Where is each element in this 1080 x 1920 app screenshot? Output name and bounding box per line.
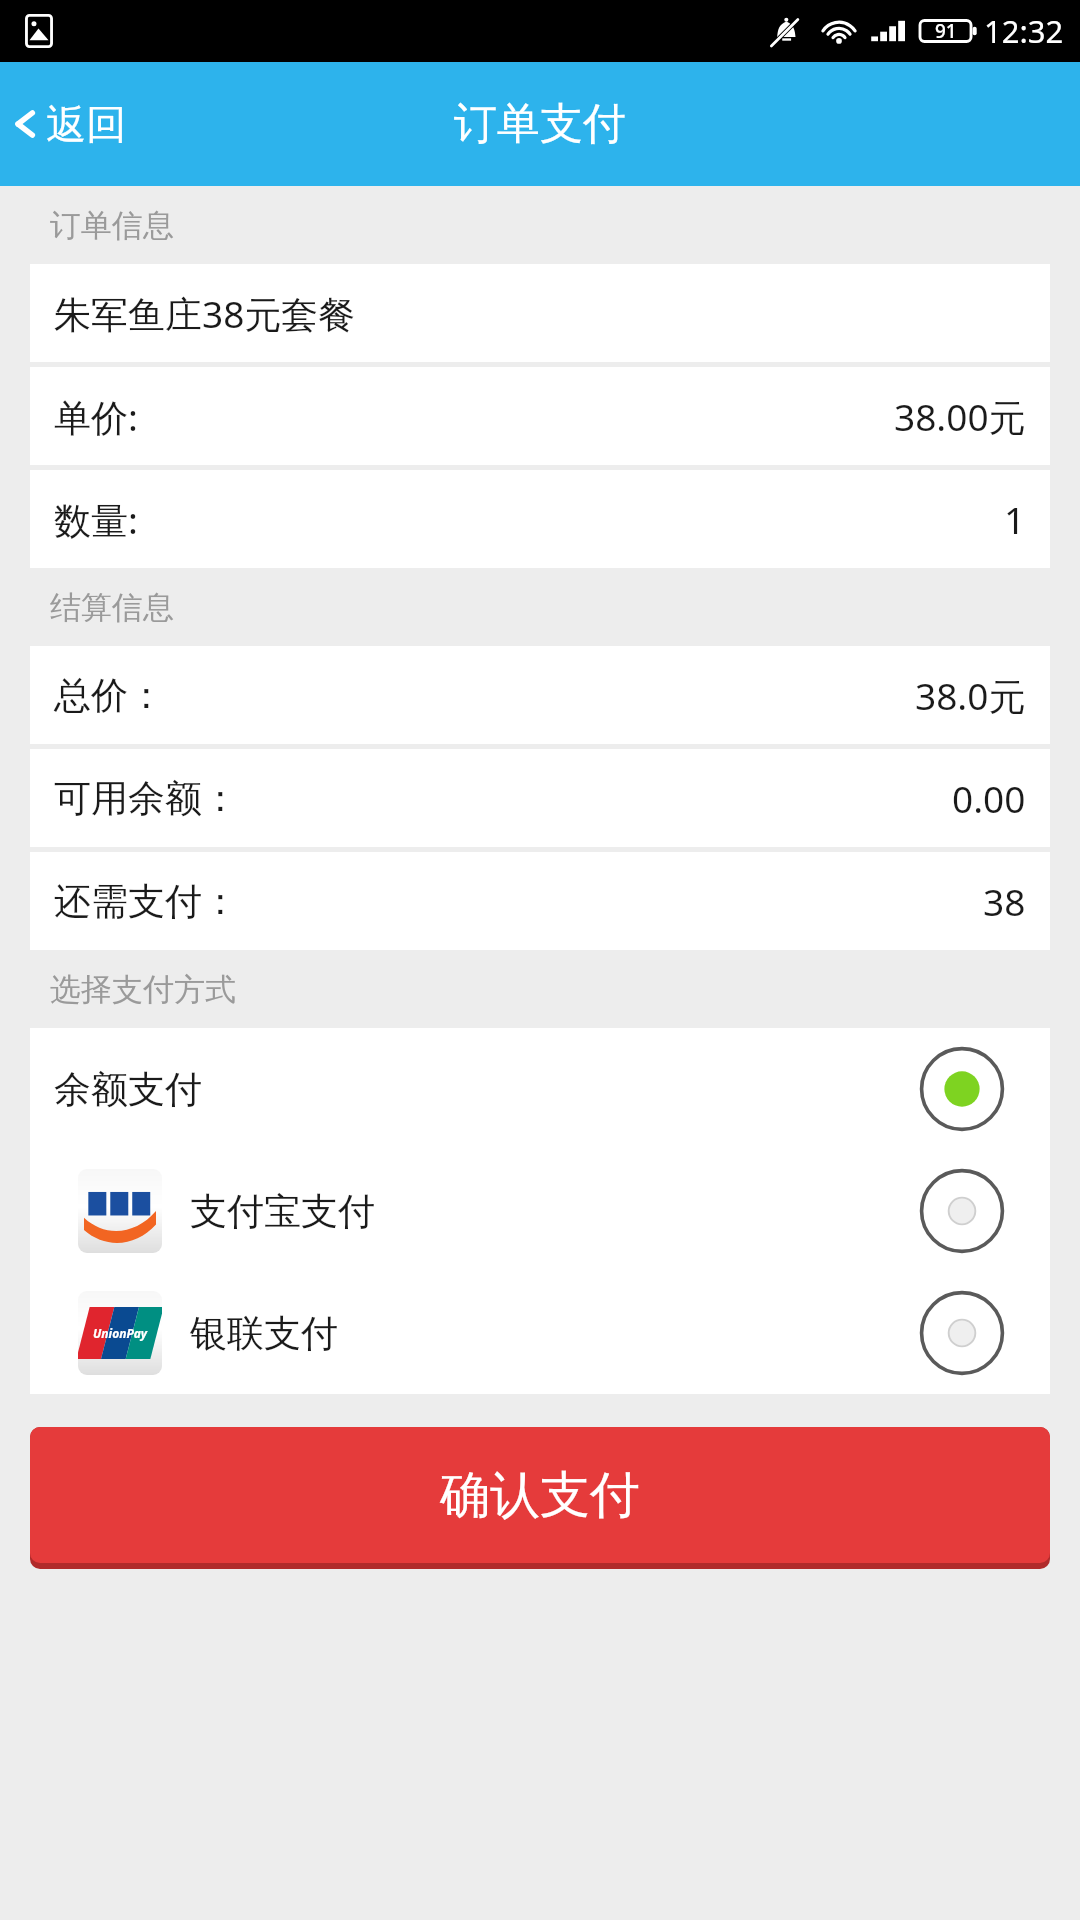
- staticText: 订单信息: [50, 206, 174, 245]
- button[interactable]: 确认支付: [30, 1427, 1050, 1563]
- staticText: 还需支付：: [54, 878, 239, 925]
- staticText: 数量:: [54, 494, 138, 545]
- staticText: 返回: [46, 99, 126, 149]
- button[interactable]: 数量:: [30, 470, 1050, 568]
- button[interactable]: 可用余额：: [30, 749, 1050, 847]
- staticText: 可用余额：: [54, 775, 239, 822]
- staticText: 38: [983, 876, 1026, 926]
- button[interactable]: 朱军鱼庄38元套餐: [30, 264, 1050, 362]
- button[interactable]: 支付宝支付: [30, 1150, 1050, 1272]
- staticText: 余额支付: [54, 1066, 202, 1113]
- staticText: 38.0元: [915, 670, 1026, 721]
- staticText: 银联支付: [190, 1310, 338, 1357]
- staticText: 单价:: [54, 391, 138, 442]
- button[interactable]: UnionPay: [30, 1272, 1050, 1394]
- staticText: 1: [1004, 494, 1026, 544]
- button[interactable]: 余额支付: [30, 1028, 1050, 1150]
- staticText: 总价：: [54, 672, 165, 719]
- staticText: 12:32: [984, 10, 1064, 52]
- staticText: 订单支付: [454, 97, 626, 151]
- staticText: 朱军鱼庄38元套餐: [54, 288, 356, 339]
- staticText: 结算信息: [50, 588, 174, 627]
- staticText: 0.00: [952, 773, 1026, 823]
- staticText: 确认支付: [440, 1464, 640, 1527]
- staticText: 选择支付方式: [50, 970, 236, 1009]
- button[interactable]: 还需支付：: [30, 852, 1050, 950]
- staticText: 91: [935, 18, 957, 44]
- button[interactable]: 返回: [0, 62, 152, 186]
- button[interactable]: 单价:: [30, 367, 1050, 465]
- staticText: 支付宝支付: [190, 1188, 375, 1235]
- staticText: UnionPay: [93, 1325, 148, 1341]
- staticText: 38.00元: [894, 391, 1026, 442]
- button[interactable]: 总价：: [30, 646, 1050, 744]
